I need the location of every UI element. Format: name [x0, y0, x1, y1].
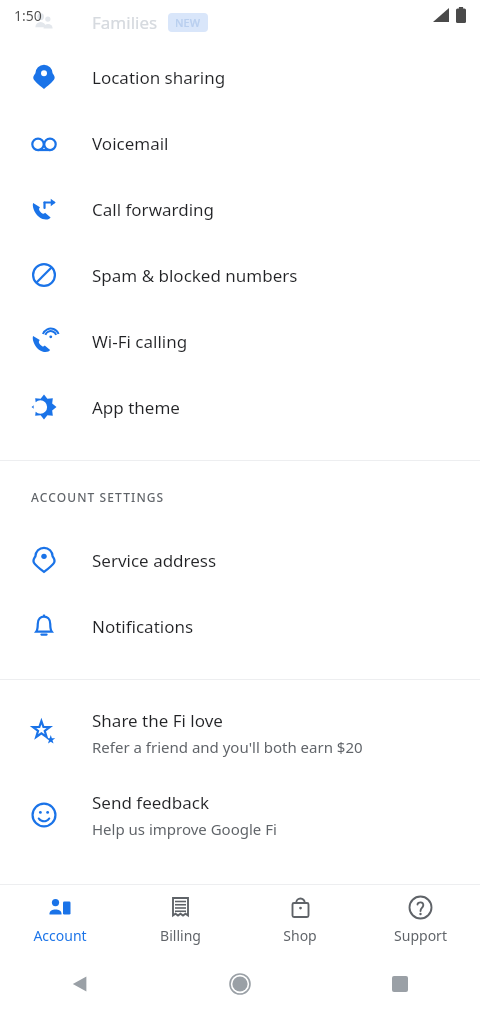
staticText: Voicemail — [92, 132, 169, 155]
staticText: Support — [394, 926, 447, 945]
button[interactable]: Account — [0, 885, 120, 955]
button[interactable]: Recents — [376, 960, 424, 1008]
staticText: Notifications — [92, 615, 194, 638]
staticText: Shop — [283, 926, 317, 945]
button[interactable]: Shop — [240, 885, 360, 955]
button[interactable]: Support — [360, 885, 480, 955]
button[interactable]: Spam & blocked numbers — [0, 242, 480, 308]
button[interactable]: Voicemail — [0, 110, 480, 176]
button[interactable]: Billing — [120, 885, 240, 955]
button[interactable]: Notifications — [0, 593, 480, 659]
button[interactable]: Home — [216, 960, 264, 1008]
button[interactable]: App theme — [0, 374, 480, 440]
button[interactable]: Share the Fi love — [0, 692, 480, 774]
staticText: Help us improve Google Fi — [92, 819, 277, 839]
staticText: Send feedback — [92, 791, 210, 814]
staticText: NEW — [175, 15, 201, 30]
button[interactable]: Wi-Fi calling — [0, 308, 480, 374]
staticText: Service address — [92, 549, 217, 572]
staticText: Spam & blocked numbers — [92, 264, 298, 287]
staticText: Account — [33, 926, 87, 945]
staticText: 1:50 — [14, 6, 42, 25]
staticText: Refer a friend and you'll both earn $20 — [92, 737, 363, 757]
button[interactable]: Send feedback — [0, 774, 480, 856]
staticText: App theme — [92, 396, 180, 419]
staticText: Location sharing — [92, 66, 226, 89]
staticText: Billing — [160, 926, 201, 945]
button[interactable]: Service address — [0, 527, 480, 593]
staticText: Families — [92, 11, 158, 34]
button[interactable]: Call forwarding — [0, 176, 480, 242]
button[interactable]: Back — [56, 960, 104, 1008]
button[interactable]: Families — [0, 0, 480, 44]
staticText: Share the Fi love — [92, 709, 223, 732]
staticText: Wi-Fi calling — [92, 330, 188, 353]
button[interactable]: Location sharing — [0, 44, 480, 110]
staticText: ACCOUNT SETTINGS — [31, 489, 165, 505]
staticText: Call forwarding — [92, 198, 215, 221]
